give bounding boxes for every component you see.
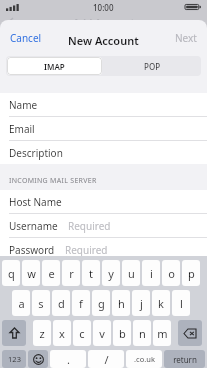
button[interactable]: h xyxy=(112,290,130,316)
staticText: Required xyxy=(68,219,111,233)
button[interactable]: / xyxy=(88,350,124,368)
staticText: Add Account xyxy=(16,17,70,29)
button[interactable]: Username xyxy=(0,214,207,237)
staticText: o xyxy=(168,266,175,281)
staticText: g xyxy=(98,296,105,311)
button[interactable]: u xyxy=(122,260,140,286)
button[interactable]: j xyxy=(132,290,150,316)
staticText: Username xyxy=(9,219,58,233)
staticText: Name xyxy=(9,98,38,112)
button[interactable]: l xyxy=(172,290,190,316)
staticText: s xyxy=(38,296,44,311)
staticText: Password xyxy=(9,243,55,257)
button[interactable]: r xyxy=(62,260,80,286)
button[interactable]: q xyxy=(2,260,20,286)
button[interactable]: Backspace xyxy=(178,320,202,346)
staticText: return xyxy=(173,354,197,365)
staticText: v xyxy=(99,326,105,341)
staticText: POP xyxy=(144,61,161,72)
button[interactable]: a xyxy=(12,290,30,316)
button[interactable]: Host Name xyxy=(0,190,207,213)
staticText: f xyxy=(79,296,83,311)
staticText: Email xyxy=(9,122,35,136)
button[interactable]: Name xyxy=(0,93,207,116)
button[interactable]: p xyxy=(182,260,200,286)
button[interactable]: Description xyxy=(0,141,207,164)
button[interactable]: d xyxy=(52,290,70,316)
staticText: w xyxy=(27,266,36,281)
button[interactable]: x xyxy=(53,320,71,346)
staticText: Description xyxy=(9,146,63,160)
staticText: q xyxy=(8,266,15,281)
staticText: t xyxy=(89,266,93,281)
staticText: Host Name xyxy=(9,195,62,209)
button[interactable]: Shift xyxy=(2,320,26,346)
button[interactable]: o xyxy=(162,260,180,286)
staticText: l xyxy=(180,296,183,311)
staticText: d xyxy=(58,296,65,311)
button[interactable]: Password xyxy=(0,238,207,261)
staticText: u xyxy=(128,266,135,281)
button[interactable]: m xyxy=(153,320,171,346)
staticText: 123 xyxy=(8,354,21,364)
staticText: Next xyxy=(175,31,197,45)
staticText: INCOMING MAIL SERVER xyxy=(9,176,97,186)
staticText: .co.uk xyxy=(134,354,155,364)
staticText: j xyxy=(140,296,143,311)
staticText: . xyxy=(67,352,70,367)
button[interactable]: f xyxy=(72,290,90,316)
staticText: r xyxy=(69,266,74,281)
button[interactable]: Cancel xyxy=(4,27,48,49)
button[interactable]: 123 xyxy=(2,350,26,368)
button[interactable]: POP xyxy=(103,56,201,76)
staticText: e xyxy=(48,266,55,281)
staticText: New Account xyxy=(68,33,139,48)
staticText: Cancel xyxy=(10,31,42,45)
button[interactable]: IMAP xyxy=(7,57,102,75)
button[interactable]: c xyxy=(73,320,91,346)
staticText: p xyxy=(188,266,195,281)
staticText: h xyxy=(118,296,125,311)
button[interactable]: b xyxy=(113,320,131,346)
button[interactable]: n xyxy=(133,320,151,346)
button[interactable]: . xyxy=(50,350,86,368)
button[interactable]: k xyxy=(152,290,170,316)
staticText: m xyxy=(157,326,168,341)
staticText: IMAP xyxy=(44,61,65,72)
button[interactable]: v xyxy=(93,320,111,346)
staticText: Add Account xyxy=(73,16,135,30)
staticText: b xyxy=(119,326,126,341)
button[interactable]: t xyxy=(82,260,100,286)
staticText: n xyxy=(139,326,146,341)
button[interactable]: y xyxy=(102,260,120,286)
button[interactable]: e xyxy=(42,260,60,286)
button[interactable]: w xyxy=(22,260,40,286)
staticText: i xyxy=(150,266,153,281)
button[interactable]: i xyxy=(142,260,160,286)
staticText: / xyxy=(104,352,109,367)
staticText: y xyxy=(108,266,114,281)
button[interactable]: Next xyxy=(169,27,203,49)
button[interactable]: return xyxy=(164,350,205,368)
staticText: 10:00 xyxy=(93,2,114,13)
staticText: a xyxy=(18,296,25,311)
button[interactable]: .co.uk xyxy=(126,350,162,368)
staticText: x xyxy=(59,326,65,341)
staticText: z xyxy=(39,326,45,341)
staticText: k xyxy=(158,296,164,311)
button[interactable]: Email xyxy=(0,117,207,140)
button[interactable]: z xyxy=(33,320,51,346)
staticText: Required xyxy=(65,243,108,257)
button[interactable]: g xyxy=(92,290,110,316)
button[interactable]: Emoji xyxy=(28,350,48,368)
staticText: c xyxy=(79,326,85,341)
button[interactable]: s xyxy=(32,290,50,316)
